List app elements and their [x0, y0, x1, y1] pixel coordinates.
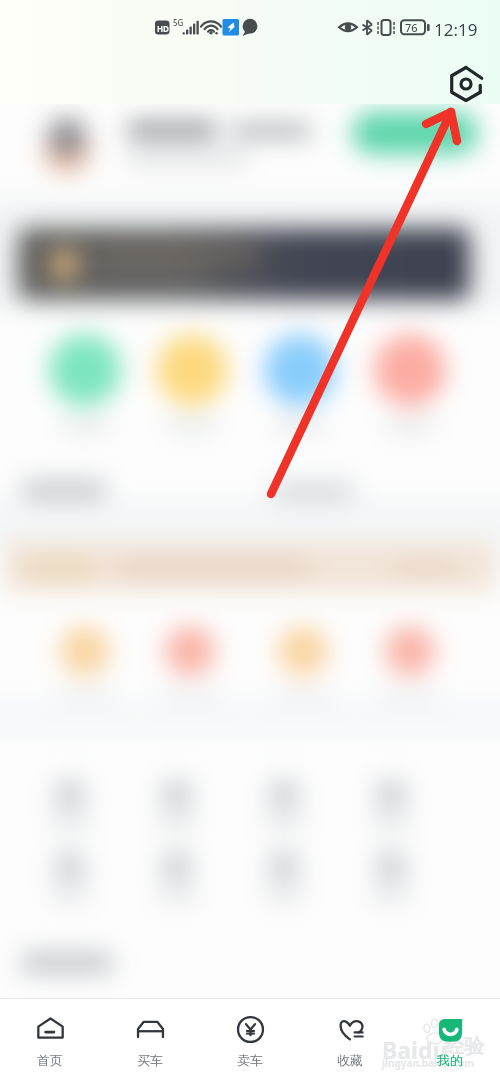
button[interactable]: 卖车 — [200, 999, 300, 1083]
staticText: 我的 — [437, 1052, 463, 1068]
staticText: 76 — [405, 20, 418, 35]
staticText: 首页 — [37, 1052, 63, 1068]
staticText: 买车 — [137, 1052, 163, 1068]
staticText: 5G — [173, 17, 184, 28]
staticText: 卖车 — [237, 1052, 263, 1068]
button[interactable]: 我的 — [400, 999, 500, 1083]
button[interactable]: Settings — [444, 62, 488, 106]
staticText: 12:19 — [434, 18, 478, 41]
staticText: jingyan.baidu.com — [382, 1056, 474, 1070]
button[interactable]: 首页 — [0, 999, 100, 1083]
button[interactable]: 收藏 — [300, 999, 400, 1083]
staticText: Baidu — [382, 1034, 448, 1065]
staticText: HD — [157, 23, 169, 34]
staticText: 收藏 — [337, 1052, 363, 1068]
button[interactable]: 买车 — [100, 999, 200, 1083]
staticText: 经验 — [444, 1034, 484, 1059]
